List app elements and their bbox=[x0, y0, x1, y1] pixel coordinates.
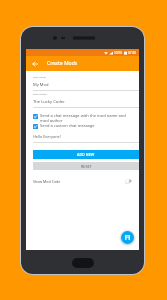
staticText: Show Mod Code bbox=[33, 179, 61, 184]
button[interactable]: Back bbox=[30, 59, 39, 68]
button[interactable]: Save bbox=[119, 229, 136, 246]
button[interactable]: Send a custom chat message bbox=[33, 123, 135, 128]
button[interactable] bbox=[125, 178, 132, 184]
button[interactable]: RESET bbox=[33, 162, 139, 170]
staticText: RESET bbox=[81, 164, 92, 169]
staticText: 100% bbox=[114, 51, 123, 55]
staticText: Send a chat message with the mod name an… bbox=[40, 113, 126, 123]
staticText: Send a custom chat message bbox=[40, 123, 95, 128]
staticText: Create Mods bbox=[47, 60, 78, 67]
button[interactable]: Show Mod Code bbox=[33, 175, 132, 187]
button[interactable]: ADD NEW bbox=[33, 150, 139, 159]
staticText: Mod Name bbox=[33, 75, 47, 78]
staticText: The Lucky Coder bbox=[33, 99, 65, 105]
staticText: 07:35 bbox=[128, 51, 137, 55]
button[interactable]: Send a chat message with the mod name an… bbox=[33, 113, 135, 123]
staticText: My Mod bbox=[33, 82, 49, 88]
staticText: ADD NEW bbox=[77, 152, 95, 157]
staticText: Mod Author bbox=[33, 92, 48, 95]
staticText: Hello Everyone! bbox=[33, 134, 61, 139]
